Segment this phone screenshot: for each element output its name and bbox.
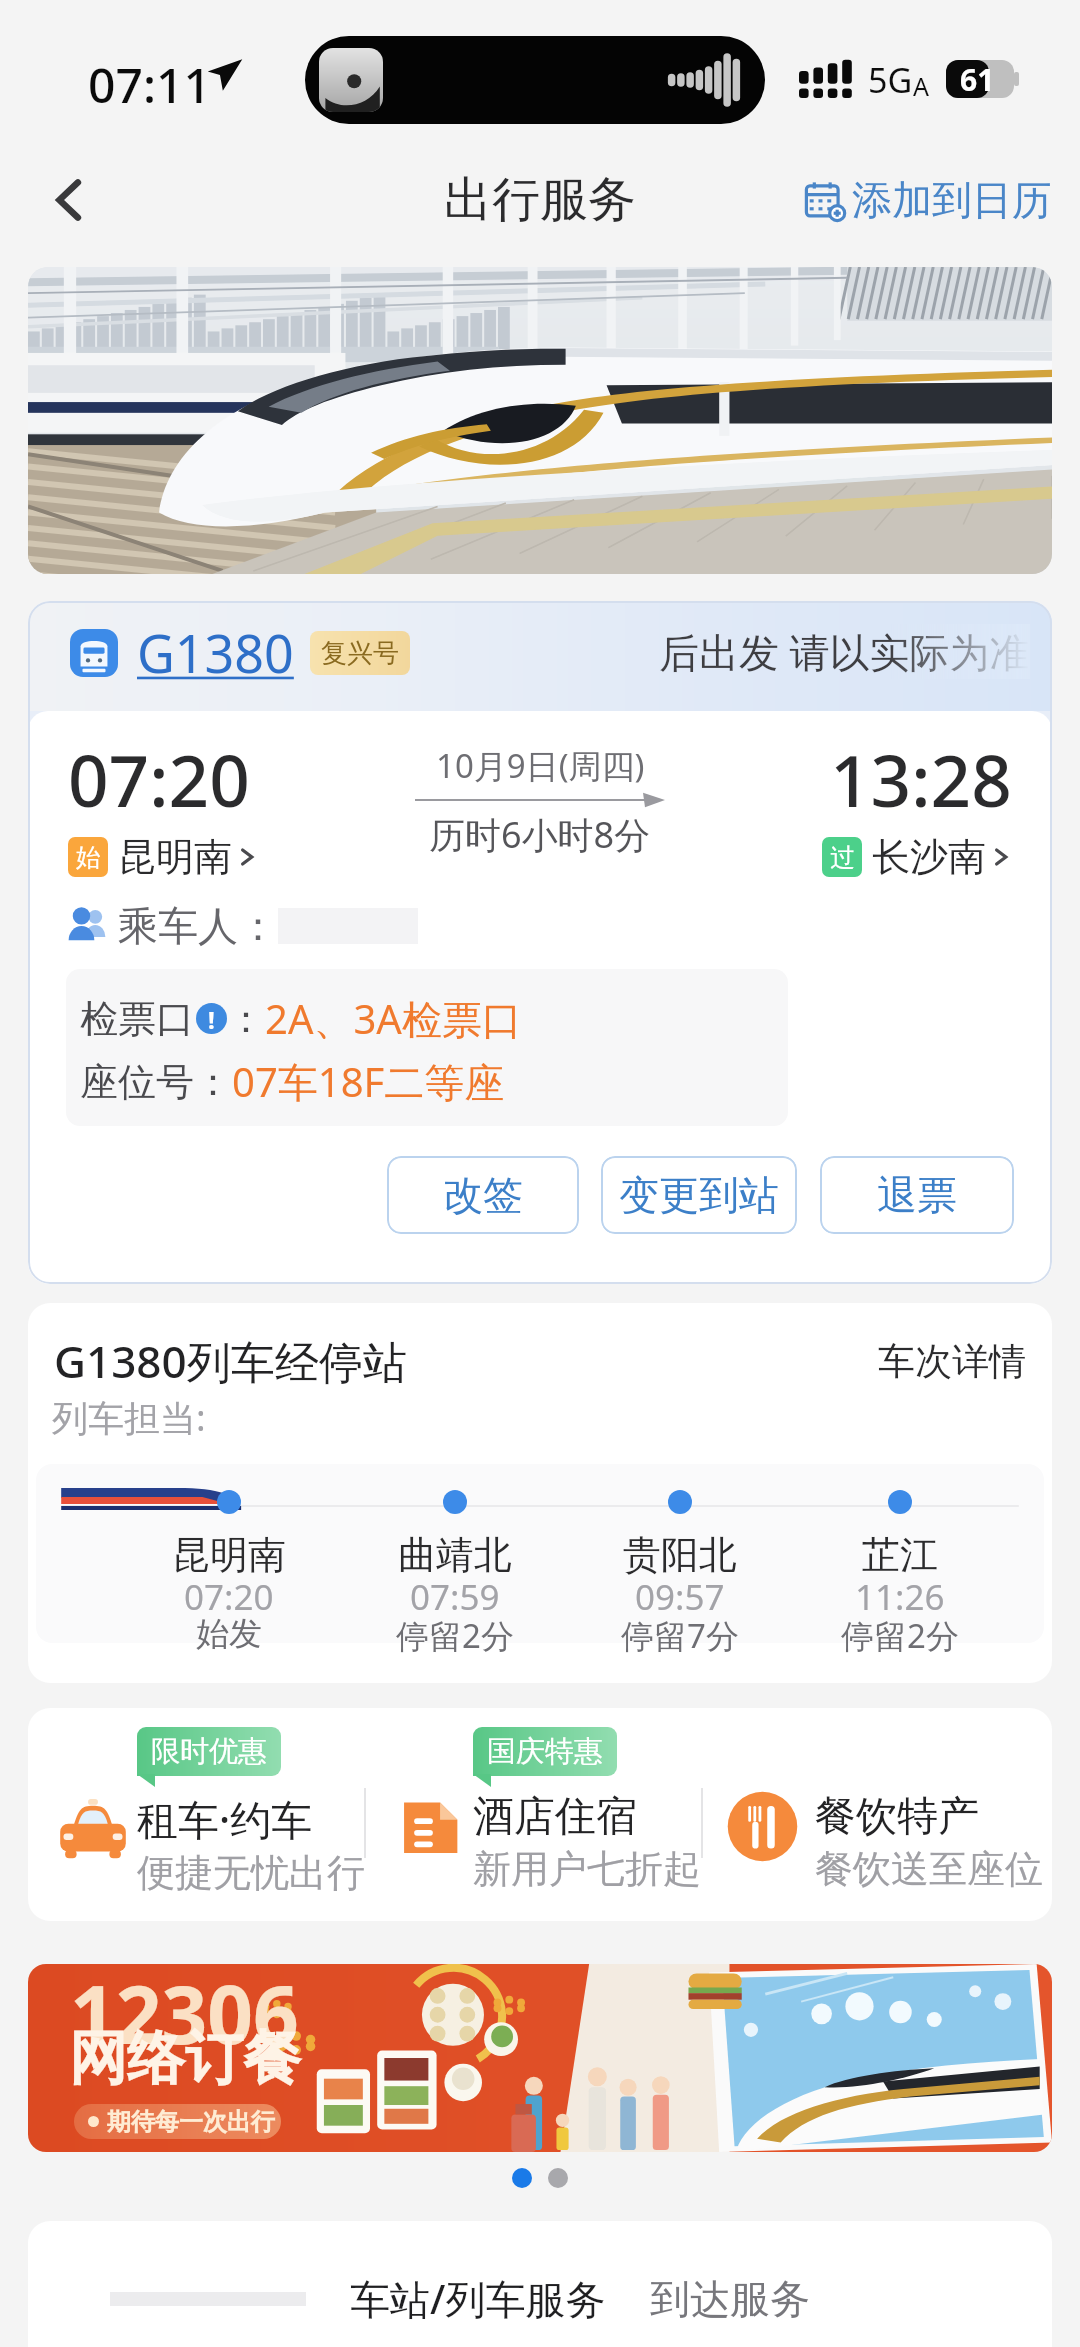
button[interactable] <box>28 267 1052 574</box>
staticText: ： <box>227 995 265 1043</box>
staticText: 停留7分 <box>621 1613 739 1658</box>
staticText: 检票口 <box>80 995 194 1043</box>
staticText: 历时6小时8分 <box>429 810 651 859</box>
staticText: 停留2分 <box>841 1613 959 1658</box>
button[interactable]: 12306 <box>28 1964 1052 2152</box>
staticText: ! <box>208 1003 215 1034</box>
staticText: 餐饮送至座位 <box>815 1845 1043 1893</box>
staticText: 2A、3A检票口 <box>265 991 522 1046</box>
staticText: 变更到站 <box>619 1170 779 1220</box>
staticText: 到达服务 <box>650 2274 810 2324</box>
staticText: 61 <box>960 59 995 97</box>
staticText: 09:57 <box>635 1573 725 1621</box>
staticText: 乘车人： <box>118 901 278 951</box>
staticText: 车次详情 <box>878 1338 1026 1385</box>
staticText: 11:26 <box>855 1573 945 1621</box>
button[interactable]: 退票 <box>820 1156 1014 1234</box>
staticText: 车站/列车服务 <box>350 2271 606 2326</box>
staticText: 新用户七折起 <box>473 1845 701 1893</box>
staticText: 贵阳北 <box>623 1531 737 1579</box>
button[interactable]: 车站/列车服务 <box>350 2271 606 2326</box>
button[interactable]: G1380 <box>70 617 410 688</box>
staticText: 座位号： <box>80 1058 232 1106</box>
staticText: 限时优惠 <box>151 1733 267 1770</box>
staticText: 昆明南 <box>172 1531 286 1579</box>
staticText: 退票 <box>877 1170 957 1220</box>
staticText: 始发 <box>196 1613 262 1655</box>
staticText: 改签 <box>443 1170 523 1220</box>
button[interactable]: 到达服务 <box>650 2274 810 2324</box>
button[interactable]: 添加到日历 <box>802 175 1052 225</box>
staticText: A <box>913 69 929 103</box>
staticText: 租车·约车 <box>137 1791 313 1847</box>
staticText: 便捷无忧出行 <box>137 1849 365 1897</box>
staticText: 网络订餐 <box>69 2022 301 2095</box>
staticText: 添加到日历 <box>852 175 1052 225</box>
button[interactable]: 改签 <box>387 1156 579 1234</box>
staticText: 国庆特惠 <box>487 1733 603 1770</box>
staticText: 过 <box>830 842 855 873</box>
staticText: 芷江 <box>862 1531 938 1579</box>
staticText: 07:11 <box>88 52 211 117</box>
staticText: 07:20 <box>184 1573 274 1621</box>
staticText: G1380列车经停站 <box>54 1331 407 1391</box>
staticText: 长沙南 <box>872 833 986 881</box>
staticText: 出行服务 <box>444 170 636 230</box>
button[interactable]: Back <box>30 160 110 240</box>
staticText: 07:59 <box>410 1573 500 1621</box>
staticText: G1380 <box>137 617 294 688</box>
staticText: 停留2分 <box>396 1613 514 1658</box>
staticText: 餐饮特产 <box>815 1791 979 1843</box>
staticText: 复兴号 <box>321 637 399 670</box>
staticText: 12306 <box>70 1964 299 2067</box>
staticText: 期待每一次出行 <box>107 2107 275 2137</box>
staticText: 10月9日(周四) <box>436 743 645 788</box>
staticText: 曲靖北 <box>398 1531 512 1579</box>
staticText: 昆明南 <box>118 833 232 881</box>
button[interactable]: 酒店住宿 <box>386 1708 716 1921</box>
staticText: 5G <box>868 57 913 103</box>
staticText: 07:20 <box>68 731 250 828</box>
button[interactable]: 餐饮特产 <box>723 1708 1052 1921</box>
staticText: 始 <box>76 842 101 873</box>
staticText: 列车担当: <box>52 1393 206 1442</box>
button[interactable]: 变更到站 <box>601 1156 797 1234</box>
staticText: 后出发 请以实际为准 <box>659 624 1030 679</box>
staticText: 酒店住宿 <box>473 1791 637 1843</box>
staticText: 07车18F二等座 <box>232 1054 505 1109</box>
staticText: 13:28 <box>830 731 1012 828</box>
button[interactable]: 租车·约车 <box>52 1708 382 1921</box>
button[interactable]: 车次详情 <box>878 1338 1026 1385</box>
